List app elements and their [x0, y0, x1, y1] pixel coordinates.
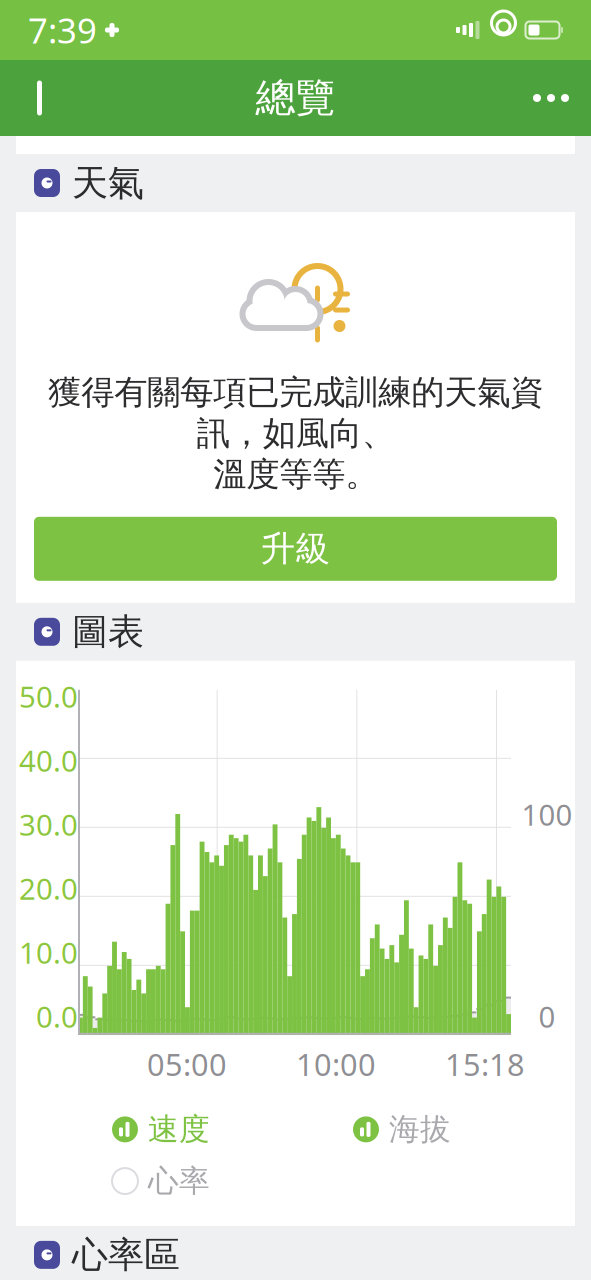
staticText: 海拔 [389, 1111, 451, 1148]
button[interactable]: 心率 [112, 1162, 210, 1200]
button[interactable]: 海拔 [353, 1111, 451, 1148]
staticText: 0.0 [36, 997, 78, 1036]
button[interactable]: Back [14, 72, 66, 124]
staticText: 升級 [260, 527, 330, 570]
staticText: 0 [538, 997, 555, 1036]
staticText: 05:00 [147, 1044, 227, 1084]
staticText: 100 [521, 795, 572, 834]
staticText: 7:39 [28, 7, 97, 53]
button[interactable]: More options [525, 72, 577, 124]
staticText: 15:18 [445, 1044, 525, 1084]
staticText: 20.0 [19, 869, 78, 908]
staticText: 50.0 [19, 677, 78, 716]
button[interactable]: 速度 [112, 1111, 210, 1148]
staticText: 獲得有關每項已完成訓練的天氣資訊，如風向、 溫度等等。 [48, 372, 543, 495]
staticText: 總覽 [255, 73, 335, 122]
staticText: 圖表 [72, 610, 144, 654]
staticText: 10:00 [296, 1044, 376, 1084]
staticText: 10.0 [19, 933, 78, 972]
staticText: 天氣 [72, 161, 144, 205]
staticText: 心率 [148, 1162, 210, 1200]
button[interactable]: 升級 [34, 517, 557, 581]
staticText: 速度 [148, 1111, 210, 1148]
staticText: 心率區 [72, 1233, 180, 1277]
staticText: 40.0 [19, 741, 78, 780]
staticText: 30.0 [19, 805, 78, 844]
